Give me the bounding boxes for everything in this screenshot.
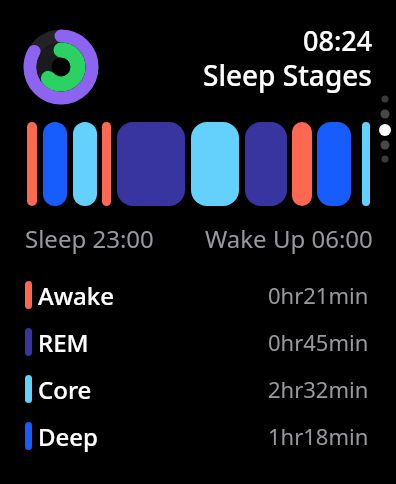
staticText: 2hr32min <box>268 374 369 404</box>
button[interactable]: Core <box>0 365 396 413</box>
staticText: Awake <box>38 279 115 312</box>
staticText: Sleep Stages <box>203 56 372 94</box>
staticText: 1hr18min <box>268 421 369 451</box>
staticText: REM <box>38 326 89 359</box>
button[interactable]: REM <box>0 318 396 366</box>
staticText: 0hr45min <box>268 327 369 357</box>
staticText: Wake Up 06:00 <box>205 222 373 255</box>
button[interactable] <box>0 122 396 206</box>
staticText: 08:24 <box>303 22 373 59</box>
staticText: Deep <box>38 420 98 453</box>
staticText: Sleep 23:00 <box>25 222 154 255</box>
staticText: 0hr21min <box>268 280 369 310</box>
button[interactable]: Deep <box>0 412 396 460</box>
button[interactable]: Awake <box>0 271 396 319</box>
staticText: Core <box>38 373 92 406</box>
